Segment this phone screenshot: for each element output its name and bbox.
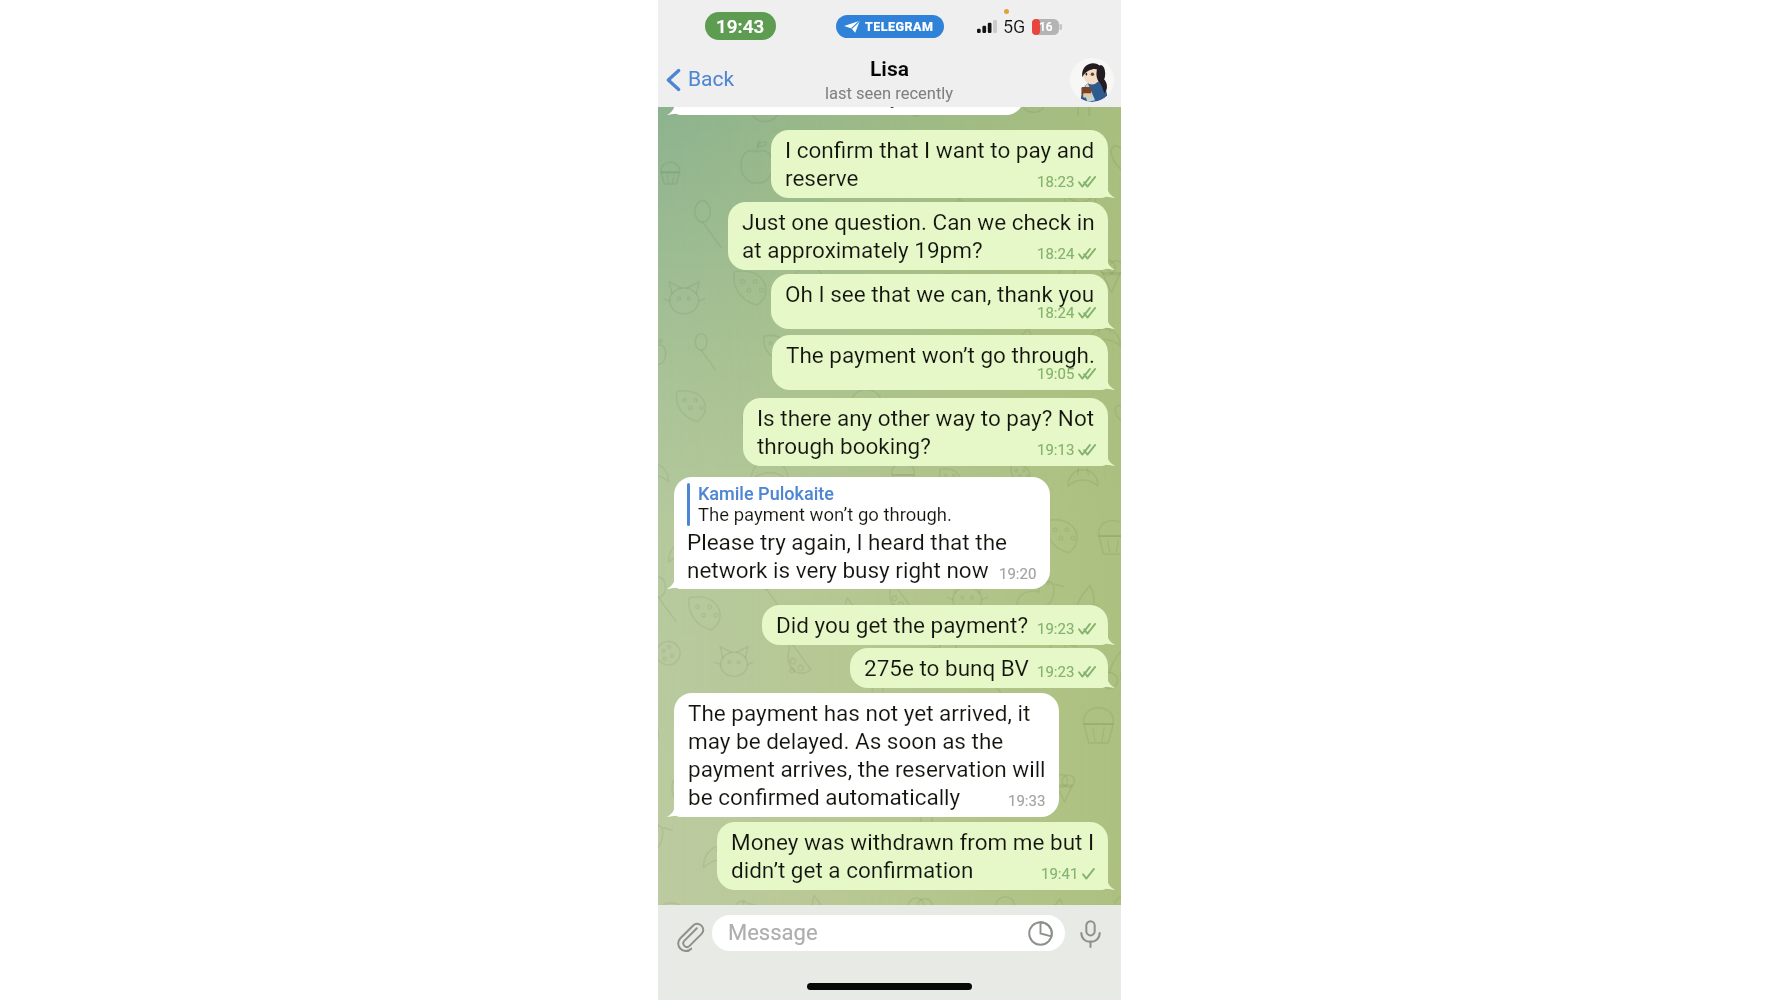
staticText: 19:23 <box>1037 620 1075 638</box>
staticText: The payment won’t go through. <box>698 504 952 526</box>
staticText: Please try again, I heard that the <box>687 529 1007 555</box>
button[interactable]: Profile photo <box>1070 58 1114 102</box>
staticText: 19:33 <box>1008 792 1046 810</box>
button[interactable]: The payment won’t go through. <box>772 335 1108 390</box>
staticText: The payment has not yet arrived, it <box>688 700 1031 726</box>
staticText: through booking? <box>757 433 931 459</box>
staticText: Lisa <box>870 57 910 82</box>
staticText: TELEGRAM <box>865 19 934 34</box>
staticText: Did you get the payment? <box>776 612 1029 638</box>
staticText: Money was withdrawn from me but I <box>731 829 1095 855</box>
button[interactable]: Hello! Thank you for the booking <box>674 107 1024 115</box>
staticText: payment arrives, the reservation will <box>688 756 1046 782</box>
staticText: 5G <box>1003 16 1026 37</box>
button[interactable]: Did you get the payment? <box>762 605 1108 645</box>
button[interactable]: Oh I see that we can, thank you <box>771 274 1108 329</box>
button[interactable]: Money was withdrawn from me but I <box>717 822 1108 890</box>
button[interactable]: TELEGRAM <box>836 15 944 38</box>
staticText: 19:20 <box>999 565 1037 583</box>
button[interactable]: I confirm that I want to pay and <box>771 130 1108 198</box>
staticText: Oh I see that we can, thank you <box>785 281 1095 307</box>
staticText: Is there any other way to pay? Not <box>757 405 1095 431</box>
button[interactable]: Attach file <box>672 916 706 950</box>
button[interactable]: Stickers <box>1025 918 1055 948</box>
staticText: 18:24 <box>1037 304 1075 322</box>
button[interactable]: 275e to bunq BV <box>850 648 1108 688</box>
staticText: be confirmed automatically <box>688 784 961 810</box>
button[interactable]: The payment has not yet arrived, it <box>674 693 1059 817</box>
staticText: Message <box>728 920 818 946</box>
staticText: may be delayed. As soon as the <box>688 728 1004 754</box>
staticText: at approximately 19pm? <box>742 237 983 263</box>
button[interactable]: Is there any other way to pay? Not <box>743 398 1108 466</box>
staticText: 19:43 <box>716 15 765 37</box>
staticText: last seen recently <box>825 84 954 103</box>
staticText: 16 <box>1039 20 1053 34</box>
staticText: reserve <box>785 165 859 191</box>
staticText: 18:23 <box>1037 173 1075 191</box>
button[interactable]: Voice message <box>1073 916 1107 950</box>
staticText: and confirm it shortly. <box>688 107 906 108</box>
button[interactable]: 19:43 <box>705 12 776 40</box>
staticText: 18:24 <box>1037 245 1075 263</box>
button[interactable]: Just one question. Can we check in <box>728 202 1108 270</box>
button[interactable]: Kamile Pulokaite <box>674 477 1050 589</box>
button[interactable]: Back <box>658 52 743 107</box>
staticText: 275e to bunq BV <box>864 655 1029 681</box>
staticText: 19:41 <box>1041 865 1079 883</box>
staticText: 19:05 <box>1037 365 1075 383</box>
staticText: 19:13 <box>1037 441 1075 459</box>
staticText: The payment won’t go through. <box>786 342 1095 368</box>
button[interactable]: Message <box>712 915 1065 951</box>
staticText: network is very busy right now <box>687 557 989 583</box>
staticText: didn’t get a confirmation <box>731 857 974 883</box>
staticText: Kamile Pulokaite <box>698 483 834 504</box>
staticText: Back <box>688 67 735 92</box>
staticText: I confirm that I want to pay and <box>785 137 1095 163</box>
staticText: 19:23 <box>1037 663 1075 681</box>
staticText: Just one question. Can we check in <box>742 209 1095 235</box>
